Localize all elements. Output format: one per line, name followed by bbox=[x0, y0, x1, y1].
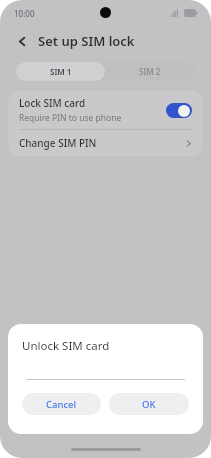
staticText: OK bbox=[142, 398, 156, 411]
staticText: Set up SIM lock bbox=[38, 32, 135, 50]
button[interactable]: SIM 1 bbox=[16, 62, 105, 81]
button[interactable]: SIM 2 bbox=[105, 62, 195, 81]
staticText: Require PIN to use phone bbox=[19, 112, 122, 124]
staticText: Change SIM PIN bbox=[19, 136, 185, 150]
button[interactable]: Cancel bbox=[22, 393, 101, 415]
staticText: SIM 1 bbox=[50, 66, 72, 77]
staticText: Lock SIM card bbox=[19, 96, 86, 110]
staticText: Cancel bbox=[46, 398, 77, 411]
staticText: 10:00 bbox=[14, 8, 35, 19]
staticText: SIM 2 bbox=[139, 66, 161, 77]
button[interactable]: OK bbox=[109, 393, 189, 415]
button[interactable]: Lock SIM card toggle bbox=[166, 103, 192, 118]
button[interactable]: Lock SIM card bbox=[8, 91, 203, 129]
button[interactable]: Back bbox=[12, 31, 32, 51]
staticText: Unlock SIM card bbox=[22, 338, 110, 354]
button[interactable]: Change SIM PIN bbox=[8, 130, 203, 156]
